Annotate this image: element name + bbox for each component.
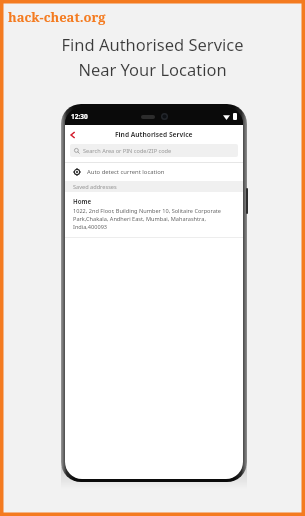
button[interactable]: Back — [65, 127, 81, 143]
staticText: Near Your Location — [78, 58, 227, 80]
staticText: 12:30 — [71, 112, 88, 121]
button[interactable]: Home — [65, 192, 243, 237]
staticText: Find Authorised Service — [115, 130, 193, 139]
staticText: Search Area or PIN code/ZIP code — [83, 147, 172, 155]
staticText: 1022, 2nd Floor, Building Number 10, Sol… — [73, 207, 235, 231]
staticText: hack-cheat.org — [8, 8, 106, 26]
button[interactable]: Search Area or PIN code/ZIP code — [70, 144, 238, 157]
button[interactable]: Auto detect current location — [65, 163, 243, 181]
staticText: Auto detect current location — [87, 168, 165, 176]
staticText: Saved addresses — [73, 183, 117, 191]
staticText: Home — [73, 197, 92, 205]
staticText: Find Authorised Service — [61, 33, 244, 55]
